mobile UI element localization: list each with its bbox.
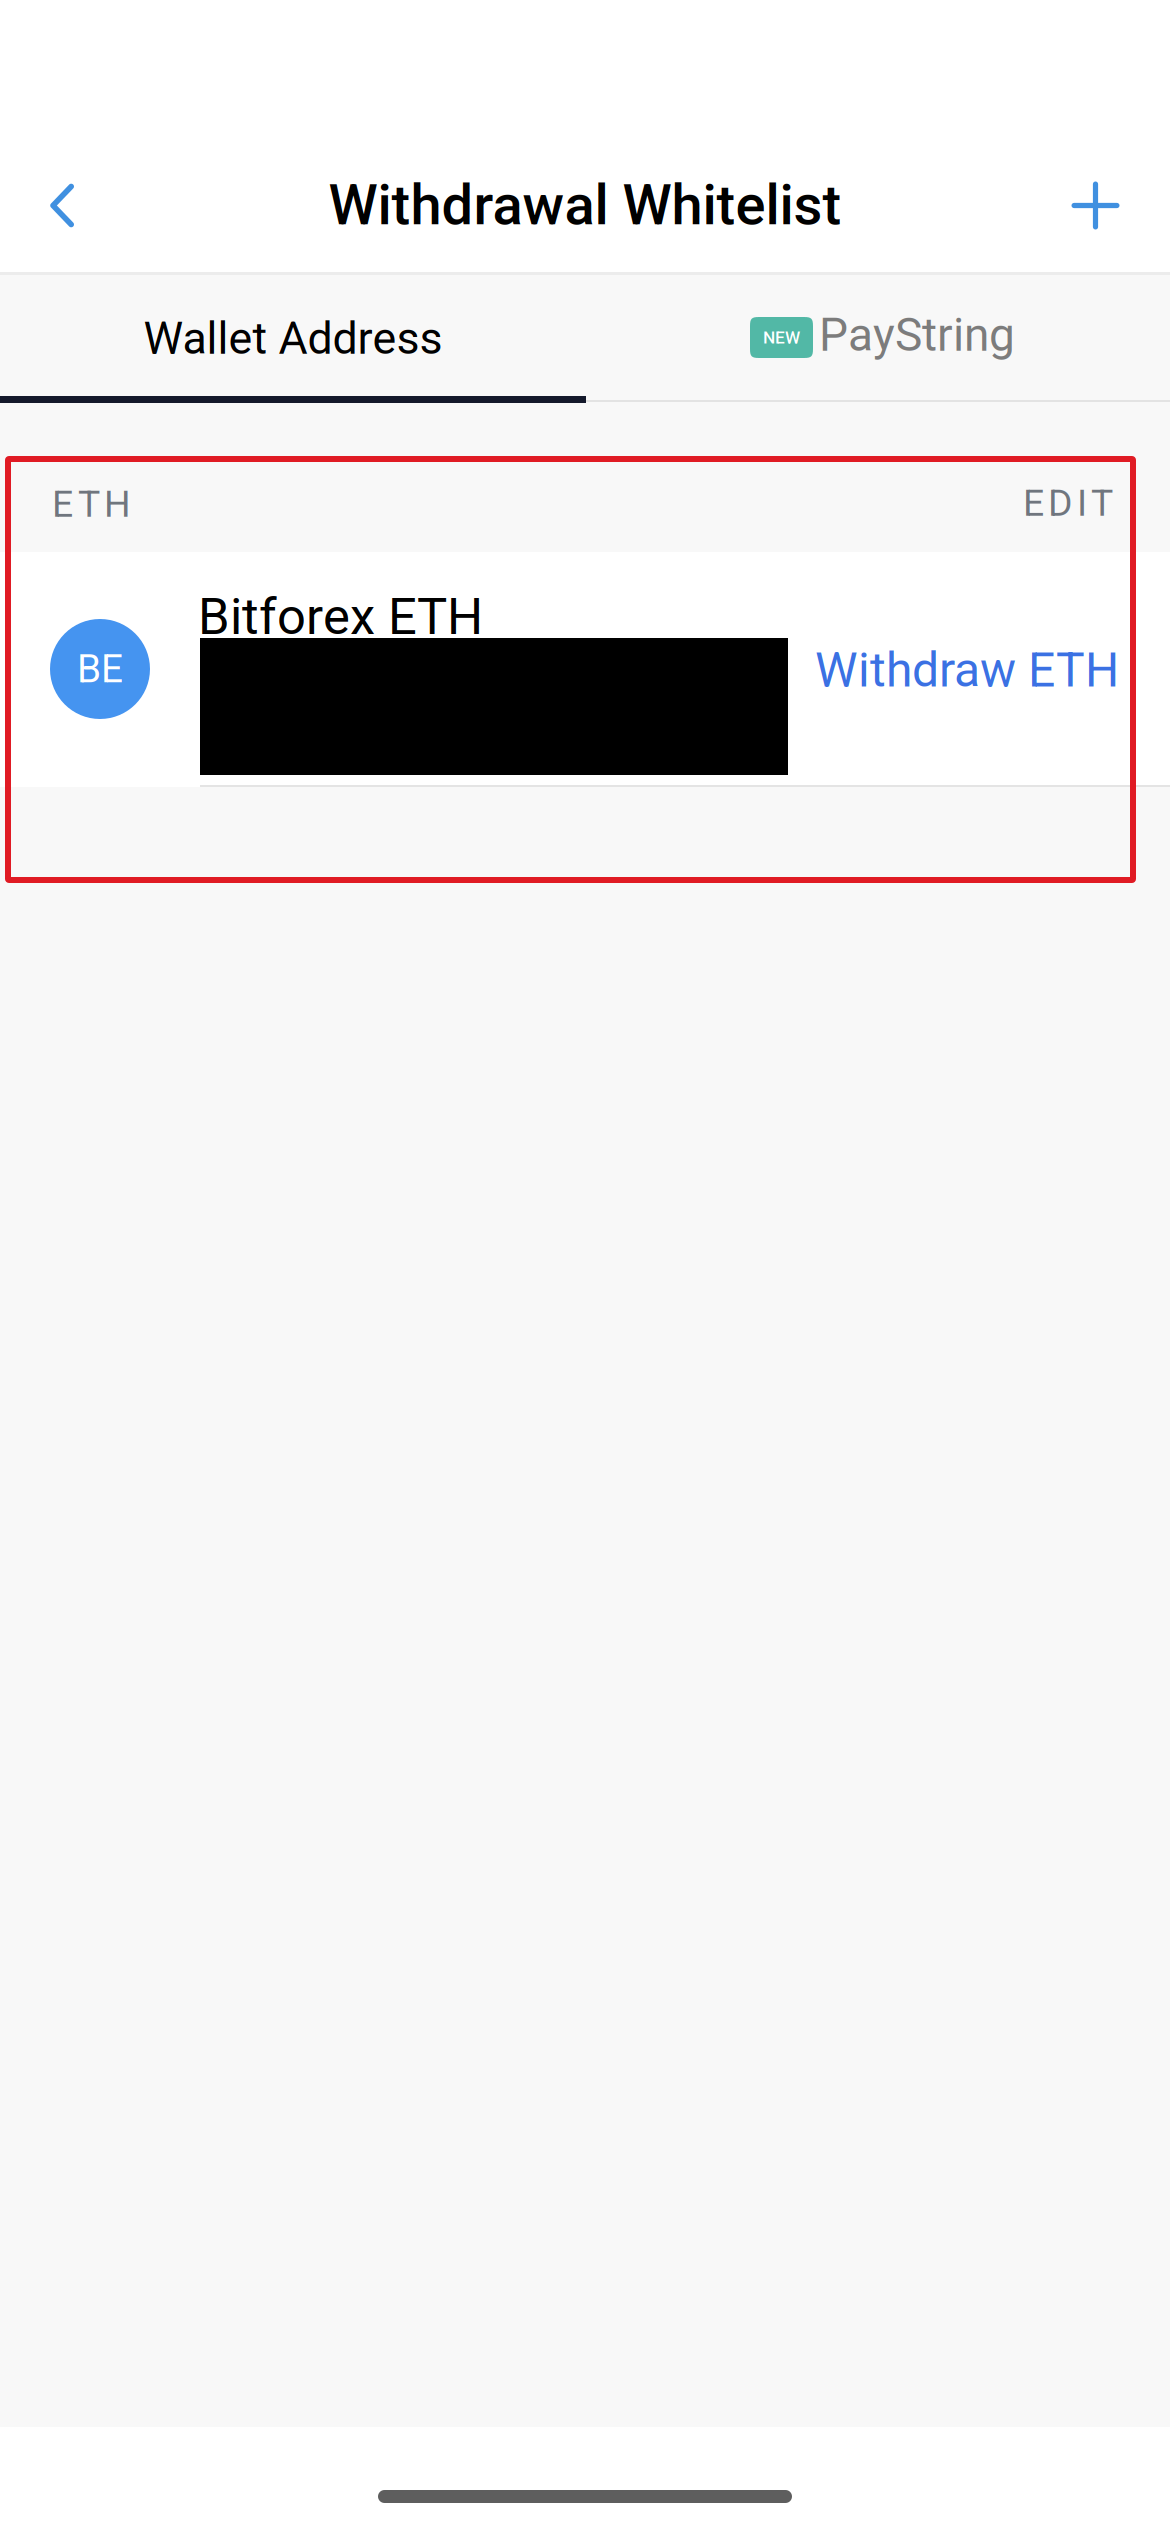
button[interactable]: EDIT [913,463,1113,543]
button[interactable]: Add address [1033,143,1158,268]
staticText: Wallet Address [143,312,442,365]
staticText: Withdrawal Whitelist [328,172,841,238]
button[interactable]: NEW [586,275,1170,402]
staticText: BE [77,646,123,692]
button[interactable]: Withdraw ETH [789,634,1119,706]
button[interactable]: Wallet Address [0,275,586,402]
staticText: ETH [52,482,131,526]
staticText: EDIT [1023,481,1113,525]
staticText: PayString [819,308,1015,362]
staticText: NEW [763,327,800,348]
staticText: Bitforex ETH [198,587,483,646]
staticText: Withdraw ETH [815,642,1119,698]
button[interactable]: Back [0,143,125,268]
